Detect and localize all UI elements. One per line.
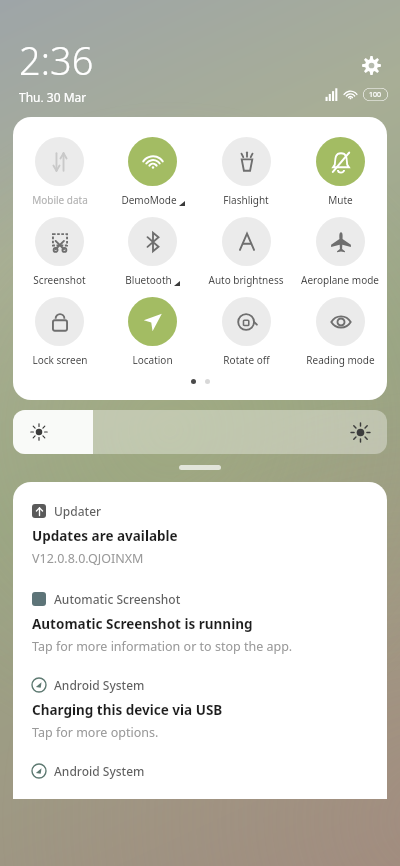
staticText: Bluetooth — [125, 273, 172, 287]
button[interactable]: DemoMode — [106, 137, 199, 217]
staticText: V12.0.8.0.QJOINXM — [32, 550, 144, 567]
button[interactable]: Location — [106, 297, 199, 377]
staticText: Auto brightness — [208, 273, 284, 287]
staticText: Updater — [54, 503, 102, 519]
button[interactable]: Bluetooth — [106, 217, 199, 297]
button[interactable]: Mobile data — [13, 137, 106, 217]
staticText: Reading mode — [306, 353, 375, 367]
staticText: Location — [132, 353, 173, 367]
staticText: Tap for more options. — [32, 724, 159, 741]
staticText: DemoMode — [121, 193, 177, 207]
staticText: Charging this device via USB — [32, 701, 223, 719]
staticText: Updates are available — [32, 527, 178, 545]
button[interactable]: Lock screen — [13, 297, 106, 377]
button[interactable]: Mute — [293, 137, 387, 217]
button[interactable]: Flashlight — [199, 137, 293, 217]
staticText: 100 — [369, 90, 382, 100]
button[interactable]: Automatic Screenshot — [32, 591, 371, 655]
staticText: 2:36 — [19, 34, 94, 86]
staticText: Screenshot — [33, 273, 86, 287]
staticText: Thu, 30 Mar — [19, 89, 87, 102]
staticText: Lock screen — [32, 353, 88, 367]
staticText: Android System — [54, 677, 145, 693]
staticText: Tap for more information or to stop the … — [32, 638, 293, 655]
staticText: Rotate off — [223, 353, 270, 367]
button[interactable]: Auto brightness — [199, 217, 293, 297]
button[interactable]: Settings — [356, 50, 386, 80]
button[interactable]: Screenshot — [13, 217, 106, 297]
staticText: Mobile data — [32, 193, 88, 207]
staticText: Flashlight — [223, 193, 269, 207]
button[interactable]: Brightness — [13, 410, 387, 454]
staticText: Aeroplane mode — [301, 273, 379, 287]
button[interactable]: Updater — [32, 503, 371, 567]
staticText: Mute — [328, 193, 353, 207]
button[interactable]: Reading mode — [293, 297, 387, 377]
staticText: Android System — [54, 763, 145, 779]
staticText: Automatic Screenshot — [54, 591, 181, 607]
button[interactable]: Rotate off — [199, 297, 293, 377]
button[interactable]: Android System — [32, 677, 371, 741]
button[interactable]: Aeroplane mode — [293, 217, 387, 297]
staticText: Automatic Screenshot is running — [32, 615, 253, 633]
